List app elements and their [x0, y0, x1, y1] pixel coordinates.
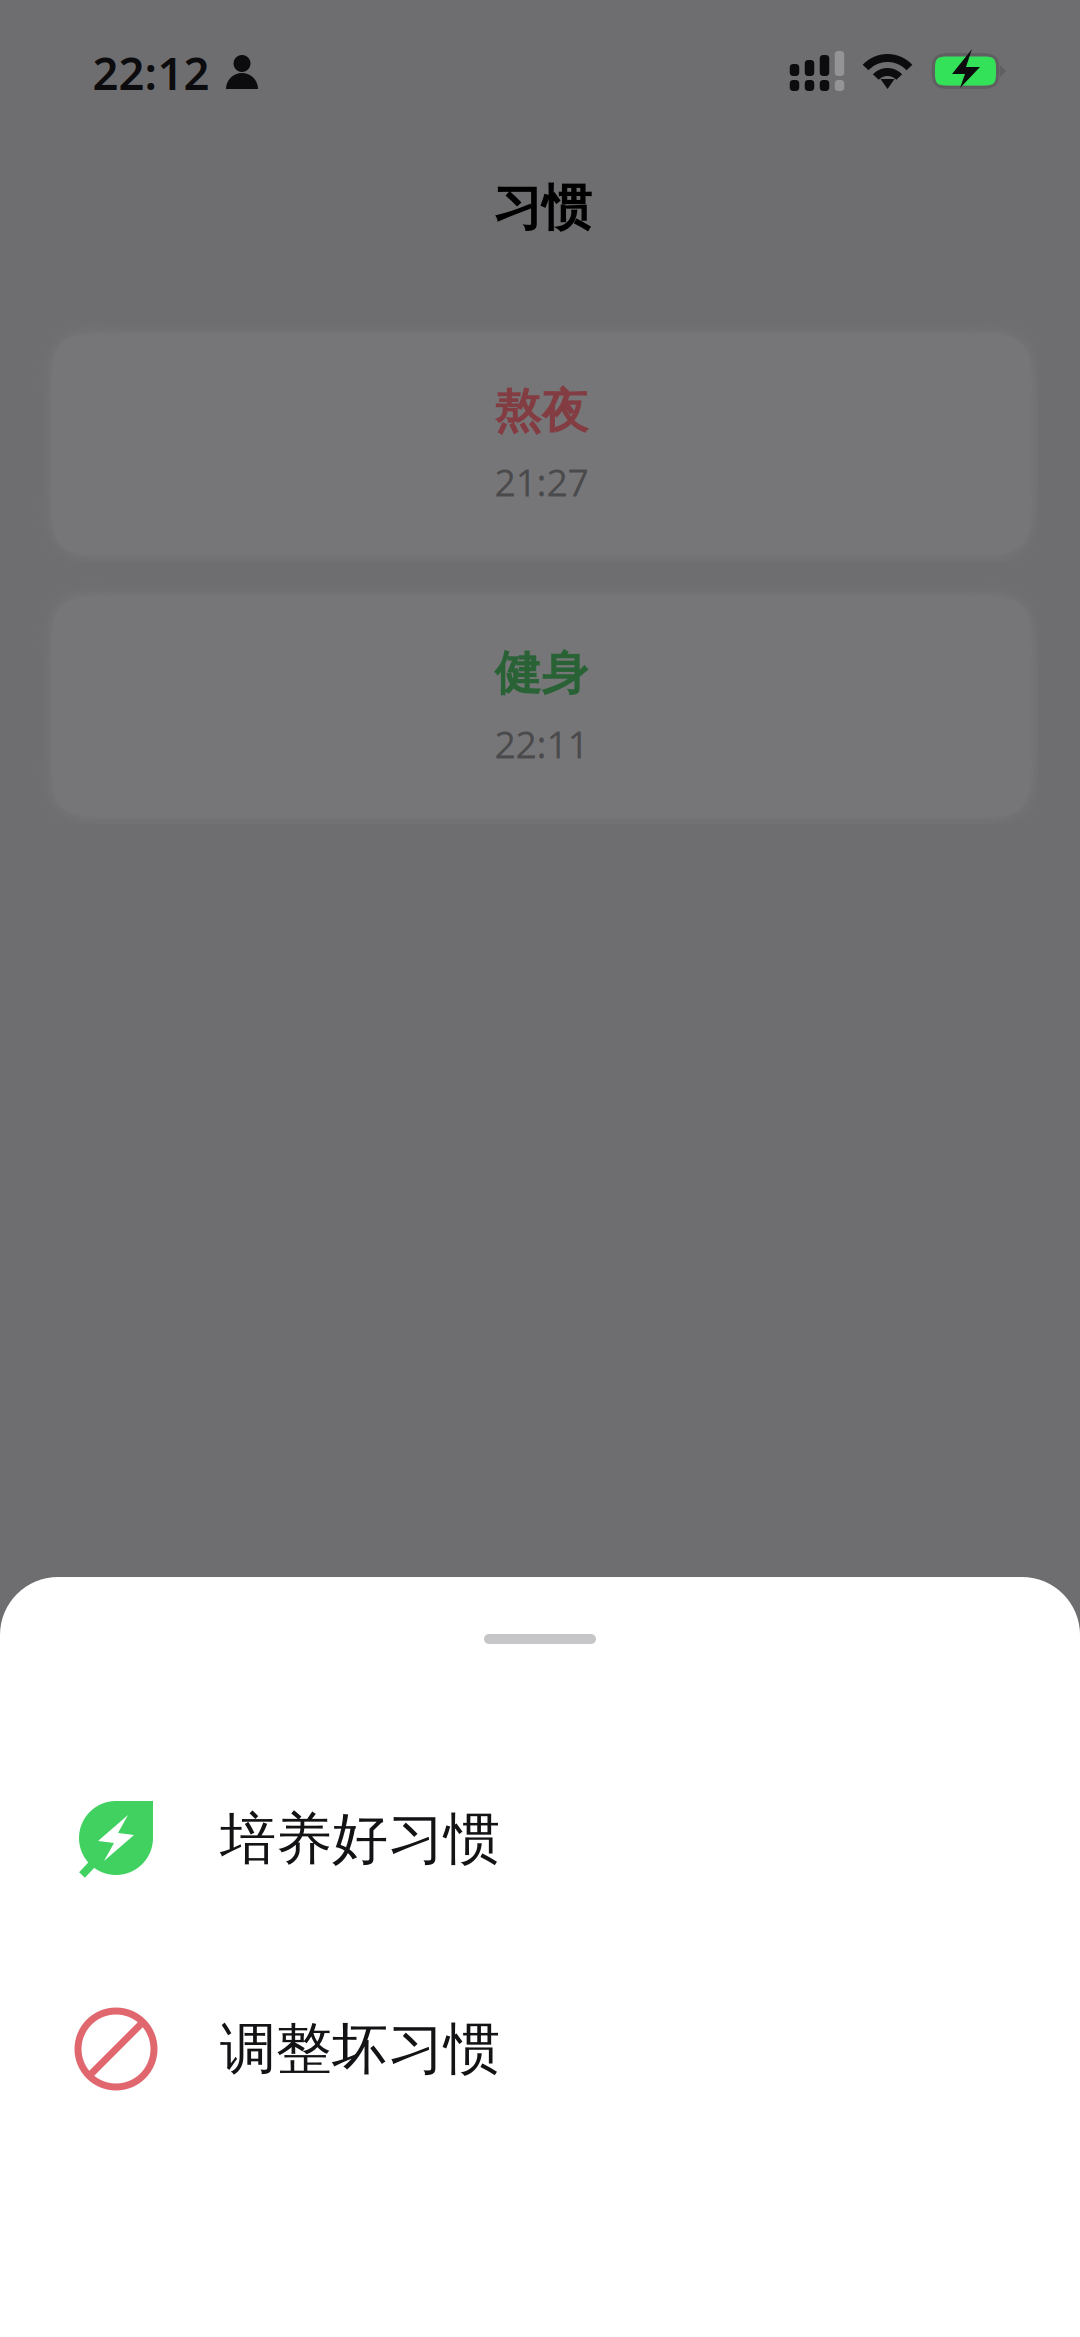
- button[interactable]: 调整坏习惯: [0, 1989, 1080, 2109]
- staticText: 培养好习惯: [220, 1805, 500, 1873]
- staticText: 调整坏习惯: [220, 2015, 500, 2083]
- staticText: 习惯: [493, 178, 591, 238]
- button[interactable]: 熬夜: [47, 329, 1036, 560]
- button[interactable]: 健身: [47, 591, 1036, 822]
- staticText: 21:27: [494, 457, 588, 507]
- staticText: 22:12: [92, 42, 209, 103]
- staticText: 健身: [494, 645, 588, 702]
- button[interactable]: 培养好习惯: [0, 1779, 1080, 1899]
- staticText: 熬夜: [494, 383, 588, 440]
- staticText: 22:11: [494, 719, 588, 769]
